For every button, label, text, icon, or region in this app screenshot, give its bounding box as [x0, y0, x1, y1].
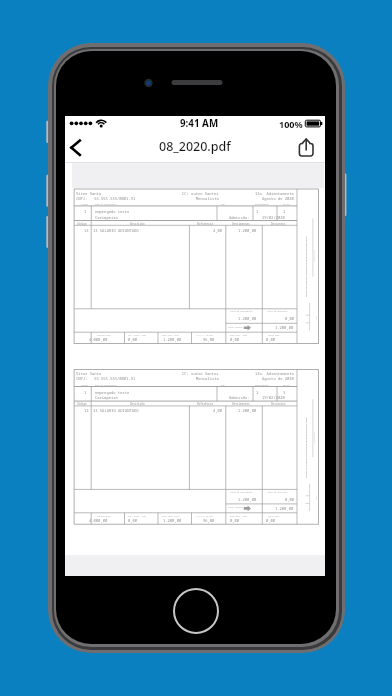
staticText: Valor Líquido	[228, 506, 243, 509]
staticText: 1.200,00	[275, 325, 294, 330]
staticText: 1.200,00	[238, 408, 257, 413]
staticText: Declaro ter recebido a importância liqui…	[305, 231, 307, 297]
staticText: 13 SALARIO ADIANTADO	[93, 228, 139, 233]
staticText: 4.000,00	[89, 337, 108, 342]
staticText: 0,00	[266, 518, 276, 523]
staticText: Descrição	[130, 402, 145, 406]
staticText: Mensalista	[196, 376, 219, 381]
staticText: 1	[256, 209, 259, 214]
button[interactable]: Share	[293, 130, 325, 163]
staticText: 0,00	[128, 337, 138, 342]
staticText: 13	[84, 408, 89, 413]
staticText: Descontos	[271, 222, 286, 226]
staticText: 1	[256, 390, 259, 395]
staticText: Filial	[283, 203, 290, 206]
staticText: 9:41 AM	[180, 117, 219, 130]
staticText: Base Calc. IRRF	[230, 515, 248, 518]
staticText: 4.000,00	[89, 518, 108, 523]
staticText: Faixa IRRF	[268, 515, 280, 518]
staticText: 13o. Adiantamento	[255, 191, 294, 196]
staticText: Salário Base	[97, 515, 111, 518]
staticText: 0,00	[285, 316, 295, 321]
staticText: Vencimentos	[232, 402, 250, 406]
staticText: Admissão:	[229, 215, 250, 220]
staticText: Sal. Contr. INSS	[128, 515, 147, 518]
staticText: Referência	[197, 222, 214, 226]
staticText: Total de Descontos	[267, 310, 288, 313]
staticText: 4,00	[213, 228, 223, 233]
staticText: CNPJ: 55.555.555/0001-91	[76, 196, 136, 201]
staticText: 100%	[279, 118, 303, 130]
staticText: Carimpeiro	[95, 215, 118, 220]
staticText: Valor Líquido	[228, 326, 243, 329]
staticText: 13 SALARIO ADIANTADO	[93, 408, 139, 413]
staticText: Departamento	[255, 384, 269, 387]
staticText: CC: outro Santos	[182, 371, 219, 376]
staticText: 0,00	[230, 337, 240, 342]
staticText: 0,00	[285, 497, 295, 502]
staticText: 1.200,00	[238, 228, 257, 233]
staticText: Agosto de 2020	[262, 376, 294, 381]
staticText: Filial	[283, 384, 290, 387]
staticText: 0,00	[266, 337, 276, 342]
staticText: 1.200,00	[163, 337, 182, 342]
staticText: 1	[84, 390, 87, 395]
staticText: Assinatura do empregado	[312, 239, 314, 262]
staticText: Vitor Santa	[76, 371, 102, 376]
staticText: Assinatura do empregado	[312, 420, 314, 443]
staticText: F.G.T.S. do Mês	[196, 515, 214, 518]
staticText: 0,00	[128, 518, 138, 523]
staticText: Código	[81, 203, 88, 206]
staticText: Admissão:	[229, 395, 250, 400]
staticText: 13	[84, 228, 89, 233]
staticText: Total de Vencimentos	[230, 310, 253, 313]
staticText: 1	[283, 209, 286, 214]
staticText: 1.200,00	[238, 316, 257, 321]
staticText: Total de Vencimentos	[230, 491, 253, 494]
staticText: empregado teste	[95, 390, 130, 395]
staticText: Faixa IRRF	[268, 334, 280, 337]
staticText: Código	[77, 402, 87, 406]
staticText: Vencimentos	[232, 222, 250, 226]
staticText: F.G.T.S. do Mês	[196, 334, 214, 337]
staticText: 1	[84, 209, 87, 214]
staticText: 0,00	[230, 518, 240, 523]
staticText: 1.200,00	[238, 497, 257, 502]
staticText: Total de Descontos	[267, 491, 288, 494]
staticText: Base Calc. FGTS	[162, 515, 180, 518]
staticText: Vitor Santa	[76, 191, 102, 196]
staticText: CNPJ: 55.555.555/0001-91	[76, 376, 136, 381]
staticText: Descrição	[130, 222, 145, 226]
staticText: Nome do Funcionário	[95, 203, 117, 206]
staticText: Agosto de 2020	[262, 196, 294, 201]
staticText: Código	[77, 222, 87, 226]
staticText: 1	[283, 390, 286, 395]
staticText: Descontos	[271, 402, 286, 406]
staticText: 1.200,00	[275, 506, 294, 511]
button[interactable]: Back	[65, 130, 95, 163]
staticText: CBO	[221, 384, 225, 387]
staticText: 96,00	[203, 337, 215, 342]
staticText: Departamento	[255, 203, 269, 206]
staticText: Salário Base	[97, 334, 111, 337]
staticText: Base Calc. FGTS	[162, 334, 180, 337]
staticText: 19/02/2020	[262, 395, 285, 400]
staticText: 13o. Adiantamento	[255, 371, 294, 376]
staticText: Carimpeiro	[95, 395, 118, 400]
staticText: CBO	[221, 203, 225, 206]
staticText: Código	[81, 384, 88, 387]
staticText: Nome do Funcionário	[95, 384, 117, 387]
staticText: 08_2020.pdf	[159, 138, 231, 155]
staticText: CC: outro Santos	[182, 191, 219, 196]
staticText: 96,00	[203, 518, 215, 523]
staticText: 19/02/2020	[262, 215, 285, 220]
staticText: 4,00	[213, 408, 223, 413]
staticText: Base Calc. IRRF	[230, 334, 248, 337]
staticText: Sal. Contr. INSS	[128, 334, 147, 337]
staticText: empregado teste	[95, 209, 130, 214]
staticText: 1.200,00	[163, 518, 182, 523]
staticText: Declaro ter recebido a importância liqui…	[305, 412, 307, 478]
staticText: Mensalista	[196, 196, 219, 201]
